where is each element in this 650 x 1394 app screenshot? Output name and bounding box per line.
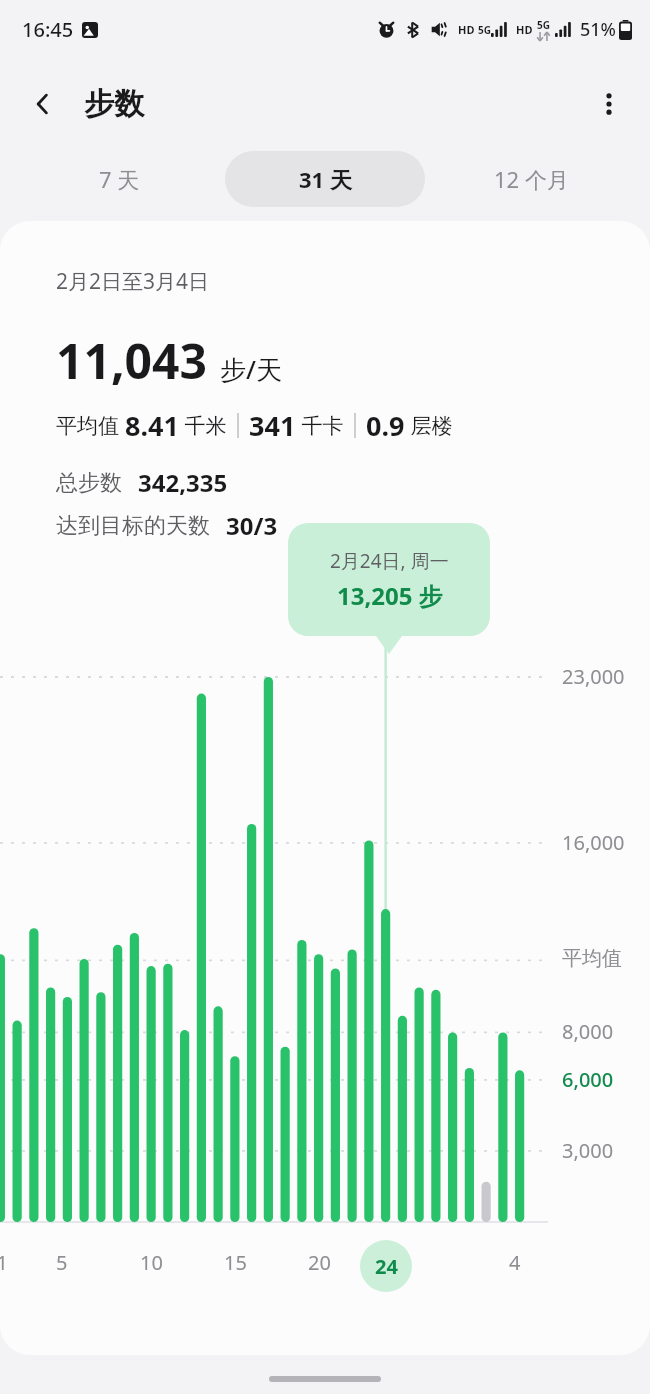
button[interactable]: 2月24日, 周一 [288,523,490,636]
button[interactable]: More options [584,79,634,129]
staticText: 6,000 [562,1066,614,1093]
staticText: 12 个月 [494,164,569,194]
staticText: 24 [375,1253,398,1280]
button[interactable]: 24 [360,1240,412,1292]
staticText: 5G [537,18,550,32]
staticText: 3,000 [562,1137,614,1164]
staticText: 4 [509,1249,521,1276]
staticText: 51% [580,17,616,42]
button[interactable]: Back [18,79,68,129]
staticText: 千米 [179,411,227,440]
staticText: 13,205 步 [337,579,443,612]
staticText: 23,000 [562,663,625,690]
staticText: 平均值 [562,946,622,971]
staticText: 31 天 [299,164,352,194]
staticText: 8,000 [562,1018,614,1045]
staticText: 11,043 [56,328,207,393]
staticText: 总步数 [56,469,122,497]
staticText: 层楼 [405,411,453,440]
staticText: 5 [56,1249,68,1276]
staticText: 步/天 [220,351,283,387]
staticText: 342,335 [138,466,228,499]
staticText: 2月2日至3月4日 [56,267,210,296]
staticText: HD [458,22,475,37]
staticText: 达到目标的天数 [56,512,210,540]
staticText: 0.9 [366,407,405,444]
staticText: /1 [0,1249,8,1276]
staticText: 平均值 [56,411,125,440]
staticText: 8.41 [125,407,179,444]
staticText: 5G [478,23,491,37]
staticText: 341 [249,407,296,444]
staticText: 16,000 [562,829,625,856]
button[interactable]: 7 天 [32,151,207,207]
staticText: 2月24日, 周一 [330,548,449,574]
staticText: 30/3 [226,509,278,542]
button[interactable]: 31 天 [225,151,425,207]
staticText: 10 [140,1249,163,1276]
staticText: 步数 [84,85,144,123]
staticText: 16:45 [22,16,74,43]
staticText: HD [516,22,533,37]
staticText: 7 天 [99,164,140,194]
staticText: 千卡 [296,411,344,440]
staticText: 15 [224,1249,247,1276]
button[interactable]: 12 个月 [444,151,619,207]
staticText: 20 [308,1249,331,1276]
